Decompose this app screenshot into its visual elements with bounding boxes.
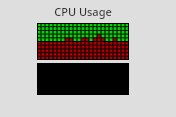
button[interactable]: CPU Usage [37, 4, 129, 19]
staticText: CPU Usage [54, 4, 112, 19]
button[interactable]: CPU usage history graph [37, 23, 129, 60]
